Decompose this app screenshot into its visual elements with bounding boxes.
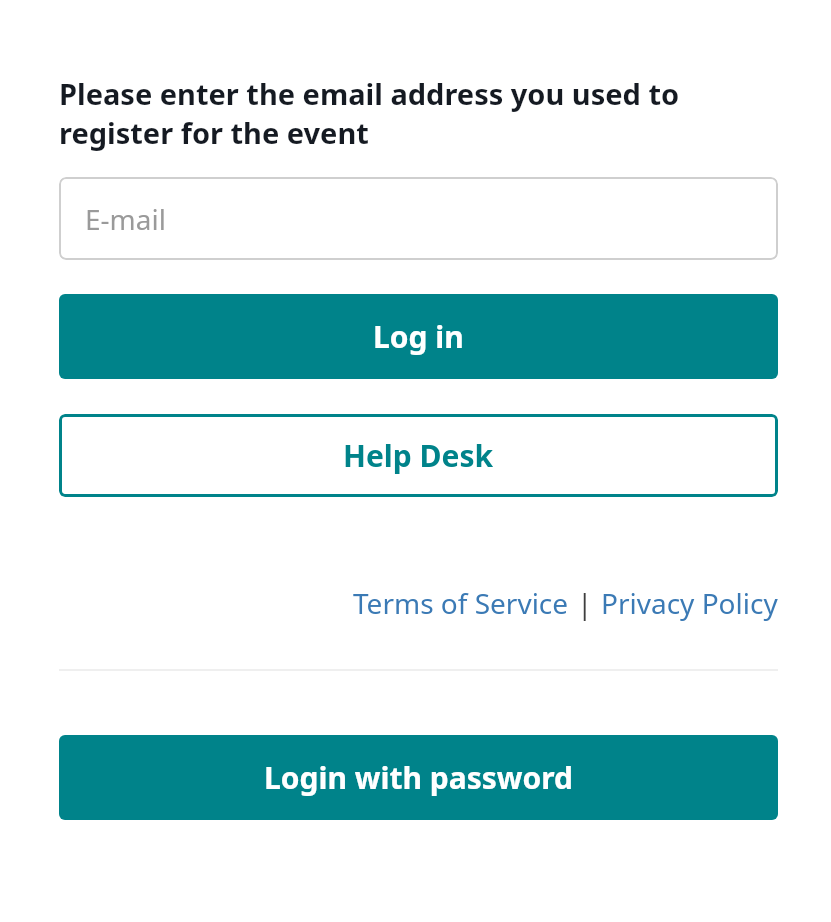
button[interactable]: E-mail <box>59 177 778 260</box>
staticText: | <box>577 584 593 622</box>
staticText: E-mail <box>85 200 166 238</box>
staticText: Privacy Policy <box>601 584 778 622</box>
button[interactable]: Help Desk <box>59 414 778 497</box>
button[interactable]: Log in <box>59 294 778 379</box>
button[interactable]: Login with password <box>59 735 778 820</box>
staticText: Terms of Service <box>353 584 569 622</box>
staticText: Help Desk <box>343 435 494 476</box>
button[interactable]: Terms of Service <box>353 584 569 622</box>
staticText: Login with password <box>264 757 573 798</box>
button[interactable]: Privacy Policy <box>601 584 778 622</box>
staticText: Please enter the email address you used … <box>59 74 778 152</box>
staticText: Log in <box>373 316 464 357</box>
